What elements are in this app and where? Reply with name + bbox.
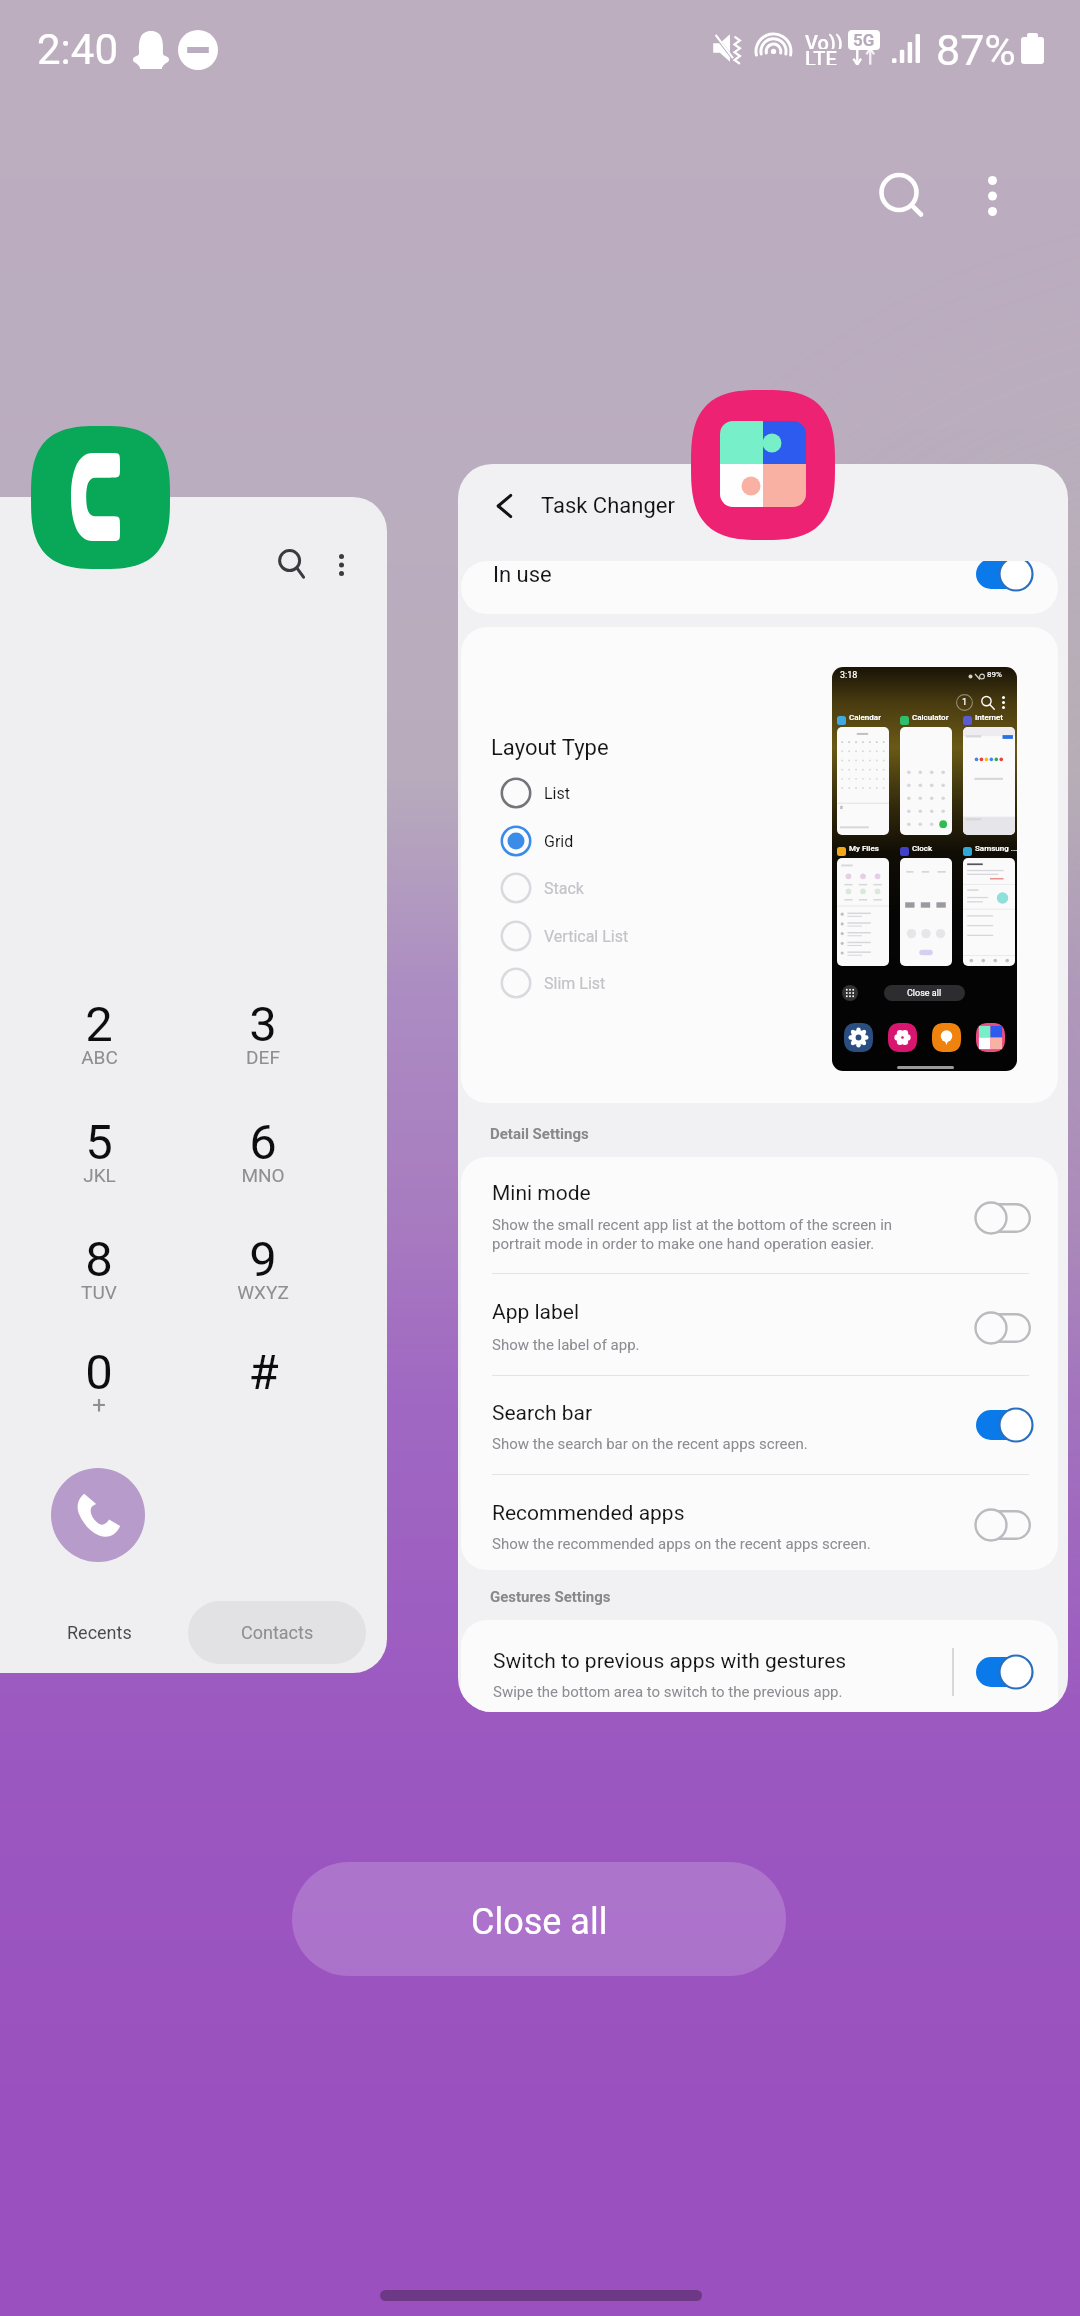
- staticText: +: [92, 1391, 106, 1419]
- staticText: TUV: [81, 1281, 117, 1303]
- staticText: Grid: [544, 832, 574, 851]
- staticText: Contacts: [241, 1622, 314, 1643]
- staticText: Calculator: [912, 713, 949, 722]
- staticText: 5G: [853, 30, 875, 50]
- staticText: App label: [492, 1300, 580, 1325]
- button[interactable]: App label: [461, 1274, 1058, 1376]
- button[interactable]: Stack: [500, 864, 800, 912]
- staticText: Calendar: [849, 713, 881, 722]
- staticText: Close all: [907, 988, 942, 999]
- button[interactable]: Contacts: [188, 1601, 366, 1664]
- button[interactable]: Search: [856, 150, 948, 242]
- button[interactable]: Recommended apps: [461, 1475, 1058, 1570]
- staticText: Gestures Settings: [490, 1588, 611, 1606]
- staticText: Recents: [67, 1622, 132, 1643]
- button[interactable]: [975, 1508, 1032, 1542]
- button[interactable]: Switch to previous apps with gestures: [461, 1620, 1058, 1712]
- button[interactable]: 6: [183, 1086, 343, 1198]
- staticText: Internet: [975, 713, 1003, 722]
- button[interactable]: [975, 1655, 1032, 1689]
- staticText: Switch to previous apps with gestures: [493, 1649, 847, 1674]
- button[interactable]: Back: [458, 464, 1068, 1712]
- staticText: #: [248, 1344, 279, 1396]
- button[interactable]: Vertical List: [500, 912, 800, 960]
- button[interactable]: More options: [311, 535, 371, 595]
- staticText: Mini mode: [492, 1181, 591, 1206]
- staticText: Show the small recent app list at the bo…: [492, 1216, 893, 1234]
- staticText: portrait mode in order to make one hand …: [492, 1235, 875, 1253]
- button[interactable]: 5: [19, 1086, 179, 1198]
- staticText: ABC: [81, 1046, 118, 1068]
- staticText: Samsung ...: [975, 844, 1017, 853]
- staticText: 89%: [987, 670, 1002, 679]
- staticText: 2: [85, 996, 113, 1048]
- button[interactable]: #: [183, 1316, 343, 1428]
- staticText: 3:18: [840, 670, 858, 681]
- button[interactable]: Search contacts: [258, 531, 326, 599]
- button[interactable]: 2: [19, 968, 179, 1080]
- button[interactable]: More options: [946, 150, 1038, 242]
- button[interactable]: Close all: [292, 1862, 786, 1976]
- button[interactable]: [975, 1201, 1032, 1235]
- staticText: My Files: [849, 844, 879, 853]
- button[interactable]: 0: [19, 1316, 179, 1428]
- button[interactable]: Grid: [500, 817, 800, 865]
- button[interactable]: Back: [472, 474, 536, 538]
- staticText: LTE: [805, 47, 837, 65]
- staticText: JKL: [83, 1164, 116, 1186]
- staticText: 8: [85, 1231, 113, 1283]
- button[interactable]: 9: [183, 1203, 343, 1315]
- staticText: 9: [249, 1231, 277, 1283]
- button[interactable]: Mini mode: [461, 1157, 1058, 1274]
- staticText: Recommended apps: [492, 1501, 685, 1526]
- staticText: Vertical List: [544, 927, 629, 946]
- staticText: Close all: [471, 1901, 608, 1943]
- button[interactable]: Slim List: [500, 959, 800, 1007]
- button[interactable]: [975, 1408, 1032, 1442]
- button[interactable]: Search bar: [461, 1376, 1058, 1475]
- staticText: In use: [493, 562, 552, 588]
- staticText: Task Changer: [541, 493, 675, 519]
- staticText: Show the search bar on the recent apps s…: [492, 1435, 808, 1453]
- button[interactable]: List: [500, 769, 800, 817]
- staticText: List: [544, 784, 570, 803]
- button[interactable]: 3: [183, 968, 343, 1080]
- staticText: 87%: [936, 25, 1016, 75]
- button[interactable]: In use: [461, 561, 1058, 614]
- staticText: Show the label of app.: [492, 1336, 640, 1354]
- button[interactable]: Recents: [9, 1602, 189, 1662]
- staticText: Slim List: [544, 974, 606, 993]
- button[interactable]: Search contacts: [0, 497, 387, 1673]
- staticText: DEF: [246, 1046, 280, 1068]
- staticText: MNO: [241, 1164, 285, 1186]
- staticText: Show the recommended apps on the recent …: [492, 1535, 871, 1553]
- staticText: 3: [249, 996, 277, 1048]
- button[interactable]: [975, 561, 1032, 591]
- staticText: 6: [249, 1114, 277, 1166]
- staticText: Detail Settings: [490, 1125, 589, 1143]
- staticText: Layout Type: [491, 735, 609, 761]
- staticText: Swipe the bottom area to switch to the p…: [493, 1683, 843, 1701]
- staticText: 5: [85, 1114, 113, 1166]
- staticText: Stack: [544, 879, 584, 898]
- button[interactable]: Call: [51, 1468, 145, 1562]
- staticText: Search bar: [492, 1401, 593, 1426]
- staticText: WXYZ: [237, 1281, 289, 1303]
- staticText: Clock: [912, 844, 933, 853]
- staticText: 2:40: [37, 25, 118, 74]
- staticText: 0: [85, 1344, 113, 1396]
- button[interactable]: [975, 1311, 1032, 1345]
- staticText: 1: [962, 697, 968, 708]
- button[interactable]: 8: [19, 1203, 179, 1315]
- staticText: Vo)): [805, 31, 843, 49]
